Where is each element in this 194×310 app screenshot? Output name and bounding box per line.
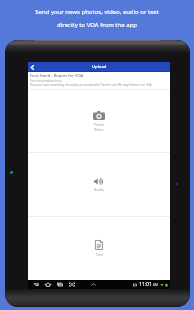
staticText: Have you seen something interesting or n… <box>30 83 152 87</box>
button[interactable]: Back <box>28 62 170 72</box>
staticText: Photo <box>94 122 105 127</box>
staticText: Send your news photos, video, audio or t… <box>35 8 159 16</box>
staticText: Video <box>94 127 104 132</box>
staticText: Text <box>96 252 103 257</box>
button[interactable]: Photo <box>28 90 170 152</box>
staticText: AM <box>153 283 158 287</box>
staticText: Audio <box>94 187 104 192</box>
button[interactable]: Text <box>28 217 170 280</box>
button[interactable]: Expand <box>89 280 98 289</box>
button[interactable]: Audio <box>28 153 170 216</box>
button[interactable]: Recent apps <box>55 280 64 289</box>
button[interactable]: Full screen <box>67 280 76 289</box>
staticText: First Hand - Report for VOA <box>30 73 84 79</box>
staticText: Upload <box>92 64 107 70</box>
button[interactable]: Home <box>43 280 52 289</box>
staticText: 11:01 <box>139 281 152 288</box>
button[interactable]: Back <box>28 62 36 72</box>
staticText: Your story matters to us. <box>30 79 63 83</box>
button[interactable]: Back <box>31 280 40 289</box>
staticText: directly to VOA from the app <box>57 21 137 29</box>
